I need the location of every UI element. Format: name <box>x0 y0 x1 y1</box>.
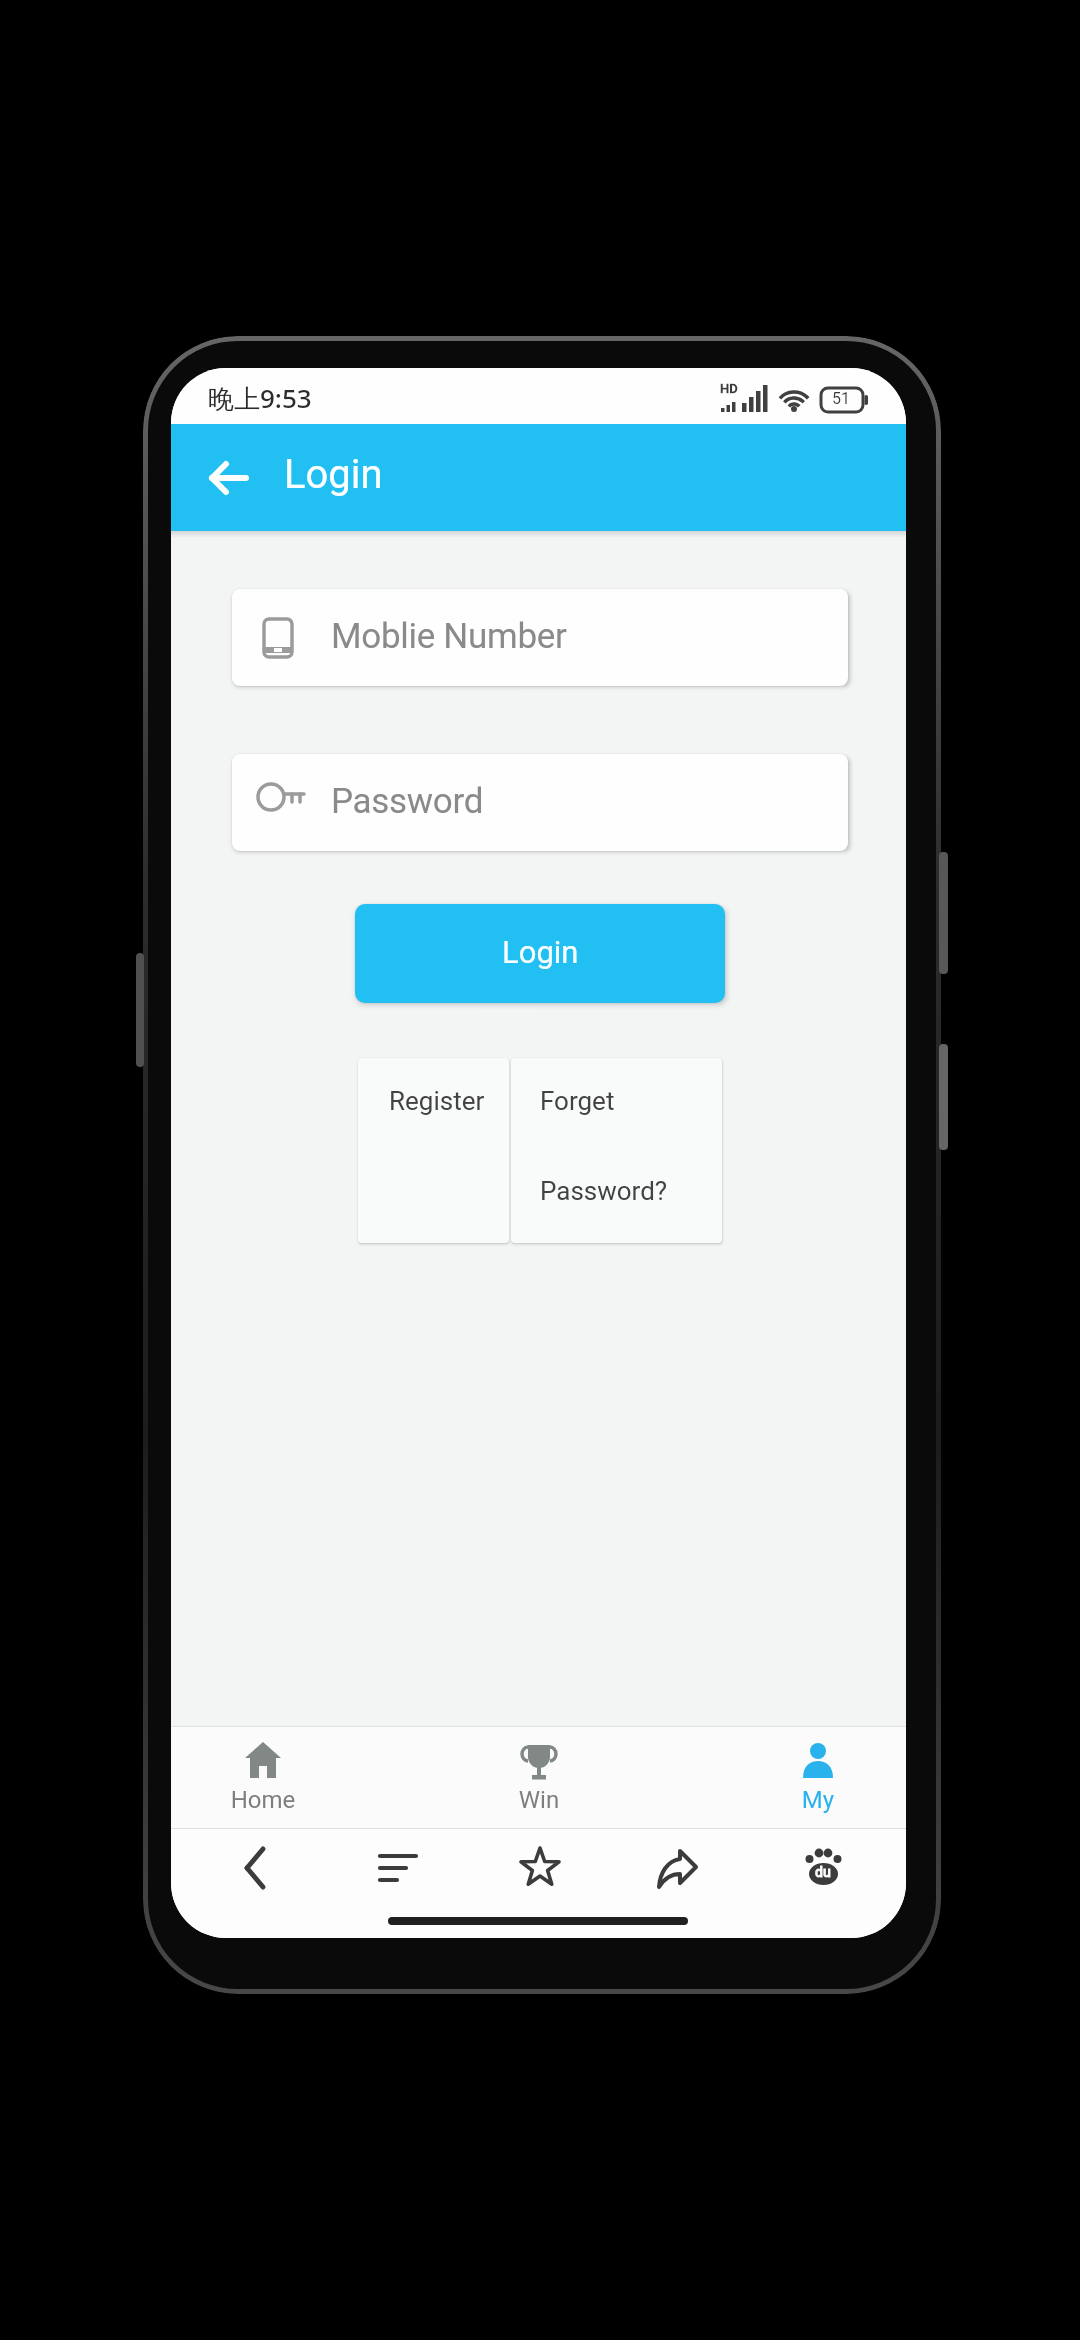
button[interactable]: Register <box>358 1058 509 1243</box>
staticText: du <box>815 1864 831 1880</box>
button[interactable]: Win <box>494 1734 584 1824</box>
staticText: Moblie Number <box>331 616 567 657</box>
button[interactable]: My <box>773 1734 863 1824</box>
staticText: Login <box>502 934 579 970</box>
button[interactable] <box>210 461 250 495</box>
staticText: Password <box>331 781 484 822</box>
button[interactable]: Password <box>232 754 848 851</box>
staticText: 晚上9:53 <box>208 380 312 416</box>
button[interactable]: Moblie Number <box>232 589 848 686</box>
button[interactable] <box>373 1842 423 1892</box>
staticText: Password? <box>540 1176 668 1206</box>
staticText: 51 <box>832 389 850 408</box>
button[interactable] <box>232 1842 282 1892</box>
staticText: Home <box>218 1786 308 1816</box>
staticText: Login <box>284 451 383 498</box>
staticText: Win <box>494 1786 584 1816</box>
button[interactable] <box>515 1842 565 1892</box>
staticText: Register <box>389 1086 485 1116</box>
button[interactable]: Login <box>355 904 725 1003</box>
button[interactable]: du <box>798 1842 848 1892</box>
button[interactable] <box>652 1842 702 1892</box>
button[interactable]: Forget <box>511 1058 722 1243</box>
staticText: Forget <box>540 1086 615 1116</box>
staticText: My <box>773 1786 863 1816</box>
staticText: HD <box>720 381 738 396</box>
button[interactable]: Home <box>218 1734 308 1824</box>
